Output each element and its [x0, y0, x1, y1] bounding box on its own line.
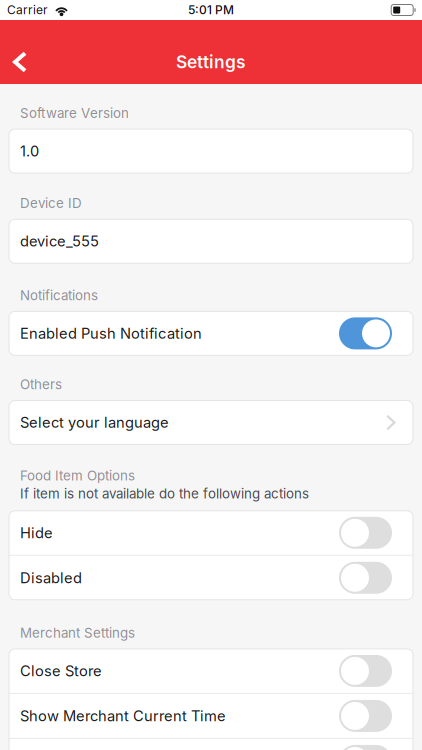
staticText: Carrier [7, 3, 48, 17]
button[interactable]: Show Merchant Current Time [9, 694, 413, 738]
staticText: Merchant Settings [20, 625, 135, 641]
staticText: Settings [176, 51, 246, 72]
staticText: Close Store [20, 662, 102, 680]
staticText: Others [20, 376, 62, 392]
button[interactable]: Disabled [9, 556, 413, 600]
button[interactable]: Enabled Push Notification [9, 311, 413, 355]
button[interactable]: Accept Orders [9, 739, 413, 750]
button[interactable]: Close Store [9, 649, 413, 693]
staticText: 1.0 [20, 142, 39, 160]
staticText: Notifications [20, 287, 98, 303]
staticText: 5:01 PM [188, 3, 234, 17]
staticText: Device ID [20, 195, 82, 211]
staticText: Enabled Push Notification [20, 324, 202, 342]
button[interactable]: Hide [9, 511, 413, 555]
staticText: Hide [20, 524, 53, 542]
staticText: If item is not available do the followin… [20, 486, 309, 502]
staticText: Show Merchant Current Time [20, 707, 226, 725]
staticText: device_555 [20, 232, 99, 250]
staticText: Food Item Options [20, 467, 135, 484]
button[interactable]: Select your language [9, 400, 413, 444]
button[interactable]: Back [0, 40, 40, 84]
staticText: Software Version [20, 105, 129, 121]
staticText: Disabled [20, 569, 82, 587]
staticText: Select your language [20, 414, 169, 431]
